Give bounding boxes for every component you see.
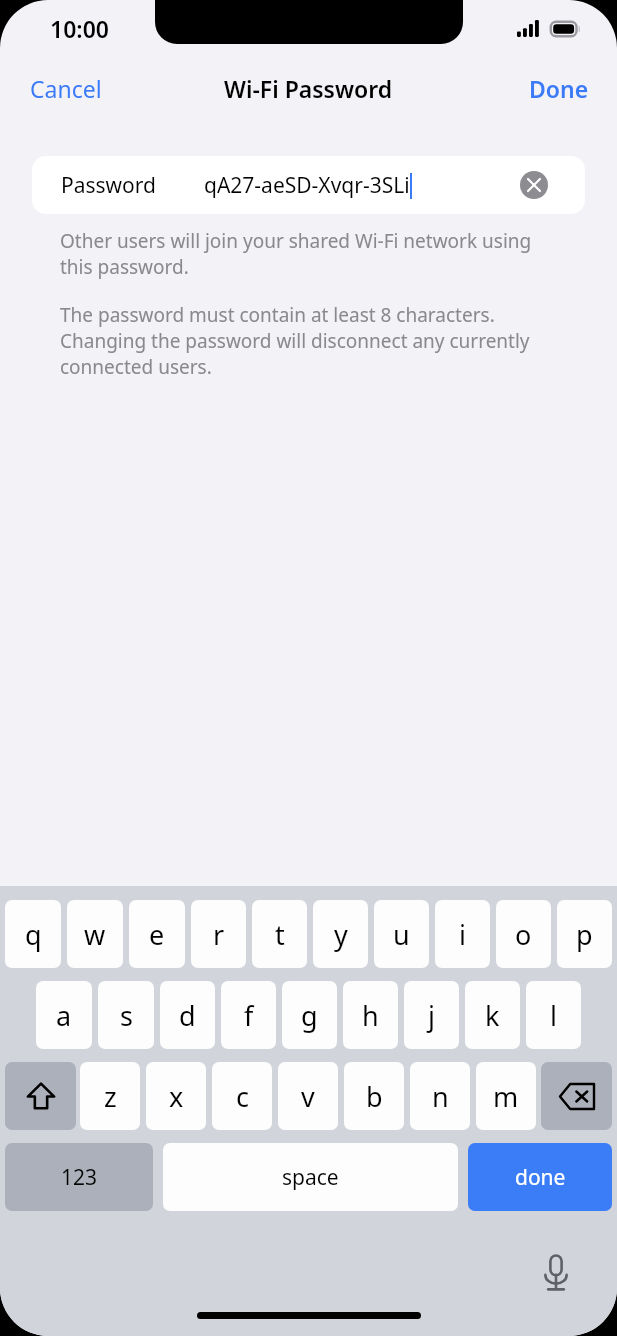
button[interactable]: m (476, 1062, 536, 1130)
button[interactable]: space (163, 1143, 458, 1211)
button[interactable]: y (313, 900, 368, 968)
button[interactable]: k (465, 981, 520, 1049)
staticText: Other users will join your shared Wi-Fi … (60, 228, 567, 280)
staticText: o (515, 916, 532, 953)
staticText: u (393, 916, 410, 953)
staticText: s (120, 997, 133, 1034)
staticText: Wi-Fi Password (224, 73, 393, 104)
staticText: k (485, 997, 500, 1034)
staticText: t (275, 916, 285, 953)
staticText: r (213, 916, 225, 953)
button[interactable]: done (468, 1143, 612, 1211)
button[interactable]: Password (32, 156, 585, 214)
staticText: 123 (61, 1163, 98, 1192)
button[interactable]: Done (515, 67, 617, 110)
button[interactable]: Clear text (520, 171, 548, 199)
button[interactable]: z (80, 1062, 140, 1130)
staticText: y (334, 916, 348, 953)
staticText: Password (61, 171, 156, 200)
button[interactable]: o (496, 900, 551, 968)
button[interactable]: q (5, 900, 61, 968)
staticText: d (179, 997, 196, 1034)
staticText: j (428, 997, 435, 1034)
button[interactable]: Backspace (541, 1062, 612, 1130)
button[interactable]: p (557, 900, 612, 968)
button[interactable]: Cancel (0, 67, 116, 110)
staticText: w (84, 916, 106, 953)
button[interactable]: c (212, 1062, 272, 1130)
staticText: n (432, 1078, 449, 1115)
staticText: qA27-aeSD-Xvqr-3SLi (204, 171, 410, 200)
button[interactable]: r (191, 900, 246, 968)
button[interactable]: b (344, 1062, 404, 1130)
button[interactable]: x (146, 1062, 206, 1130)
staticText: e (149, 916, 165, 953)
staticText: space (282, 1163, 339, 1192)
staticText: g (301, 997, 318, 1034)
button[interactable]: t (252, 900, 307, 968)
staticText: Cancel (30, 73, 102, 104)
button[interactable]: Dictation (535, 1252, 577, 1294)
staticText: i (459, 916, 466, 953)
button[interactable]: 123 (5, 1143, 153, 1211)
staticText: c (236, 1078, 249, 1115)
staticText: q (25, 916, 42, 953)
staticText: done (515, 1163, 566, 1192)
button[interactable]: i (435, 900, 490, 968)
button[interactable]: l (526, 981, 581, 1049)
button[interactable]: a (36, 981, 92, 1049)
staticText: x (169, 1078, 184, 1115)
staticText: m (493, 1078, 519, 1115)
staticText: a (56, 997, 72, 1034)
staticText: v (301, 1078, 315, 1115)
staticText: p (576, 916, 593, 953)
staticText: The password must contain at least 8 cha… (60, 302, 567, 380)
button[interactable]: Shift (5, 1062, 76, 1130)
button[interactable]: g (282, 981, 337, 1049)
button[interactable]: s (98, 981, 154, 1049)
staticText: b (366, 1078, 383, 1115)
button[interactable]: w (67, 900, 123, 968)
button[interactable]: h (343, 981, 398, 1049)
staticText: 10:00 (50, 13, 109, 44)
button[interactable]: f (221, 981, 276, 1049)
staticText: Done (529, 73, 589, 104)
button[interactable]: d (160, 981, 215, 1049)
staticText: h (362, 997, 379, 1034)
button[interactable]: u (374, 900, 429, 968)
button[interactable]: j (404, 981, 459, 1049)
staticText: l (550, 997, 557, 1034)
staticText: z (104, 1078, 117, 1115)
button[interactable]: v (278, 1062, 338, 1130)
staticText: f (244, 997, 254, 1034)
button[interactable]: n (410, 1062, 470, 1130)
button[interactable]: e (129, 900, 185, 968)
